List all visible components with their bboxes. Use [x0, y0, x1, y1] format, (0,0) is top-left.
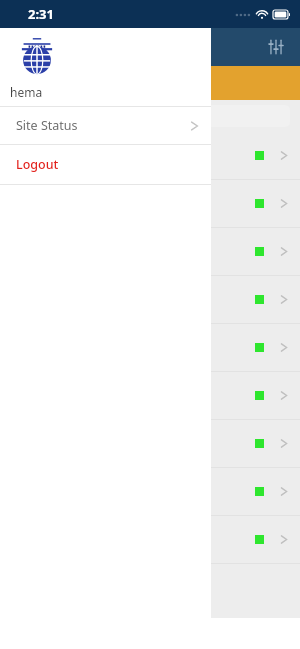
- button[interactable]: [10, 105, 290, 127]
- staticText: 2:31: [28, 5, 54, 23]
- button[interactable]: Site Golf: [0, 420, 300, 468]
- staticText: 2:31: [28, 5, 54, 23]
- staticText: Site Status: [16, 117, 78, 134]
- staticText: Logout: [16, 156, 59, 173]
- button[interactable]: Remote Site E...: [0, 516, 300, 564]
- button[interactable]: Site Delta: [0, 276, 300, 324]
- button[interactable]: Logout: [0, 145, 211, 184]
- button[interactable]: Site Charlie: [0, 228, 300, 276]
- button[interactable]: Site Hotel: [0, 468, 300, 516]
- button[interactable]: Site Bravo: [0, 180, 300, 228]
- staticText: hema: [10, 84, 43, 100]
- button[interactable]: Filter: [260, 31, 292, 63]
- button[interactable]: Site Echo: [0, 324, 300, 372]
- button[interactable]: Site Status: [0, 107, 211, 144]
- button[interactable]: Site Alpha: [0, 132, 300, 180]
- staticText: Site Alpha: [10, 148, 62, 163]
- button[interactable]: Site Foxtrot: [0, 372, 300, 420]
